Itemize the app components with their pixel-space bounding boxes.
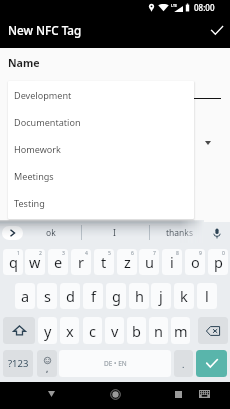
- staticText: e: [54, 252, 63, 272]
- staticText: Name: [8, 56, 40, 70]
- button[interactable]: Shift: [3, 317, 35, 344]
- button[interactable]: m: [171, 317, 190, 344]
- staticText: Meetings: [14, 170, 54, 182]
- button[interactable]: Hide keyboard: [43, 386, 59, 402]
- button[interactable]: Recent apps: [170, 386, 186, 402]
- button[interactable]: Voice input: [209, 225, 225, 241]
- staticText: c: [89, 321, 96, 341]
- button[interactable]: Save: [205, 18, 229, 42]
- staticText: ok: [46, 227, 56, 239]
- staticText: n: [154, 321, 163, 341]
- button[interactable]: r: [71, 249, 91, 275]
- staticText: m: [174, 321, 188, 341]
- staticText: 5: [108, 250, 111, 257]
- button[interactable]: g: [106, 283, 126, 309]
- staticText: r: [78, 252, 84, 272]
- button[interactable]: Backspace: [198, 317, 228, 344]
- button[interactable]: z: [117, 249, 137, 275]
- staticText: 7: [153, 250, 156, 257]
- staticText: 2: [39, 250, 42, 257]
- button[interactable]: b: [127, 317, 146, 344]
- staticText: v: [111, 321, 119, 341]
- staticText: 8: [176, 250, 179, 257]
- button[interactable]: s: [37, 283, 57, 309]
- button[interactable]: Space: [59, 350, 171, 377]
- button[interactable]: c: [83, 317, 102, 344]
- staticText: .: [182, 358, 185, 370]
- button[interactable]: e: [48, 249, 68, 275]
- staticText: Development: [14, 89, 72, 101]
- staticText: DE • EN: [104, 359, 127, 368]
- button[interactable]: h: [129, 283, 149, 309]
- button[interactable]: Period: [174, 350, 193, 377]
- button[interactable]: ok: [23, 222, 79, 244]
- staticText: p: [214, 252, 223, 272]
- staticText: ?123: [8, 357, 29, 370]
- button[interactable]: o: [185, 249, 205, 275]
- staticText: 9: [199, 250, 202, 257]
- button[interactable]: a: [15, 283, 35, 309]
- staticText: Documentation: [14, 116, 81, 128]
- staticText: w: [29, 252, 41, 272]
- staticText: 4: [85, 250, 88, 257]
- button[interactable]: Meetings: [8, 162, 194, 189]
- button[interactable]: Home: [107, 386, 123, 402]
- staticText: I: [113, 227, 116, 239]
- button[interactable]: Testing: [8, 189, 194, 216]
- staticText: y: [44, 321, 52, 341]
- button[interactable]: j: [151, 283, 171, 309]
- staticText: u: [145, 252, 154, 272]
- button[interactable]: t: [94, 249, 114, 275]
- staticText: Testing: [14, 197, 45, 209]
- staticText: l: [205, 286, 209, 306]
- button[interactable]: u: [139, 249, 159, 275]
- staticText: t: [101, 252, 107, 272]
- button[interactable]: Homework: [8, 135, 194, 162]
- button[interactable]: Documentation: [8, 108, 194, 135]
- staticText: 1: [17, 250, 20, 257]
- button[interactable]: n: [149, 317, 168, 344]
- button[interactable]: Emoji: [37, 350, 57, 377]
- staticText: z: [124, 252, 131, 272]
- button[interactable]: f: [83, 283, 103, 309]
- button[interactable]: i: [162, 249, 182, 275]
- staticText: thanks: [166, 227, 193, 239]
- button[interactable]: thanks: [151, 222, 207, 244]
- button[interactable]: l: [197, 283, 217, 309]
- button[interactable]: Enter: [196, 350, 227, 377]
- button[interactable]: w: [25, 249, 45, 275]
- staticText: 0: [222, 250, 225, 257]
- staticText: x: [66, 321, 74, 341]
- staticText: 6: [131, 250, 134, 257]
- staticText: New NFC Tag: [8, 22, 82, 38]
- staticText: k: [180, 286, 188, 306]
- button[interactable]: v: [105, 317, 124, 344]
- staticText: 3: [62, 250, 65, 257]
- staticText: o: [191, 252, 200, 272]
- staticText: b: [132, 321, 141, 341]
- staticText: ,: [46, 363, 49, 374]
- staticText: s: [44, 286, 51, 306]
- staticText: Homework: [14, 143, 61, 155]
- button[interactable]: I: [86, 222, 142, 244]
- staticText: q: [9, 252, 18, 272]
- staticText: g: [112, 286, 121, 306]
- staticText: d: [66, 286, 75, 306]
- staticText: f: [91, 286, 96, 306]
- staticText: a: [21, 286, 30, 306]
- staticText: j: [159, 286, 163, 306]
- button[interactable]: y: [38, 317, 57, 344]
- button[interactable]: Development: [8, 81, 194, 108]
- button[interactable]: More suggestions: [2, 226, 23, 240]
- staticText: 08:00: [194, 2, 215, 13]
- staticText: LTE: [171, 3, 178, 8]
- button[interactable]: d: [60, 283, 80, 309]
- button[interactable]: q: [3, 249, 23, 275]
- button[interactable]: Switch keyboard: [196, 386, 212, 402]
- button[interactable]: Symbols: [3, 350, 33, 377]
- staticText: h: [135, 286, 144, 306]
- button[interactable]: x: [60, 317, 79, 344]
- staticText: i: [170, 252, 174, 272]
- button[interactable]: p: [208, 249, 228, 275]
- button[interactable]: k: [174, 283, 194, 309]
